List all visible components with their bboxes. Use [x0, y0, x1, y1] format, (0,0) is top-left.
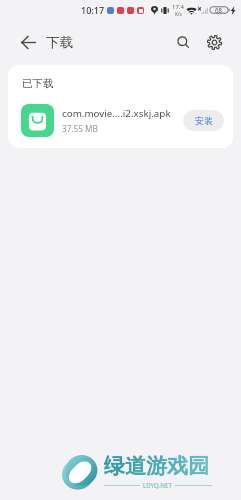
button[interactable]: com.movie....i2.xskj.apk [8, 98, 233, 143]
staticText: com.movie....i2.xskj.apk [62, 107, 171, 120]
staticText: K/s [175, 11, 182, 17]
staticText: 68 [215, 6, 223, 14]
staticText: 安装 [195, 115, 213, 126]
staticText: 绿道游戏园 [104, 453, 209, 479]
staticText: 下载 [46, 34, 73, 51]
staticText: 17.4 [172, 3, 184, 11]
staticText: LDYQ.NET [143, 481, 172, 489]
staticText: 37.55 MB [62, 123, 98, 134]
button[interactable]: Back [13, 24, 43, 60]
button[interactable]: Settings [197, 25, 231, 59]
button[interactable]: 安装 [183, 110, 224, 131]
button[interactable]: Search [166, 25, 200, 59]
staticText: 10:17 [81, 4, 105, 16]
staticText: 已下载 [22, 77, 54, 90]
